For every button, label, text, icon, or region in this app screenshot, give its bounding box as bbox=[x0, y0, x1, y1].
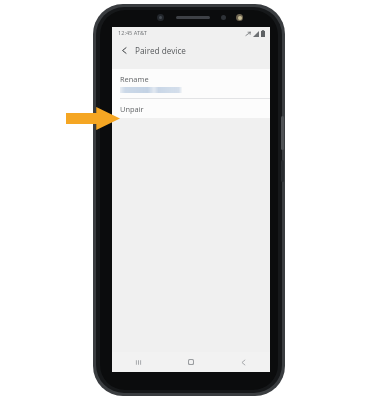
button[interactable]: Back bbox=[217, 352, 270, 372]
button[interactable]: Rename bbox=[112, 69, 270, 98]
staticText: Paired device bbox=[135, 45, 186, 56]
staticText: Unpair bbox=[120, 104, 144, 114]
staticText: 12:45 AT&T bbox=[118, 29, 147, 37]
button[interactable]: Home bbox=[164, 352, 217, 372]
button[interactable]: Recents bbox=[112, 352, 164, 372]
staticText: Rename bbox=[120, 74, 149, 84]
button[interactable]: Unpair bbox=[112, 99, 270, 118]
button[interactable]: Back bbox=[117, 43, 131, 57]
